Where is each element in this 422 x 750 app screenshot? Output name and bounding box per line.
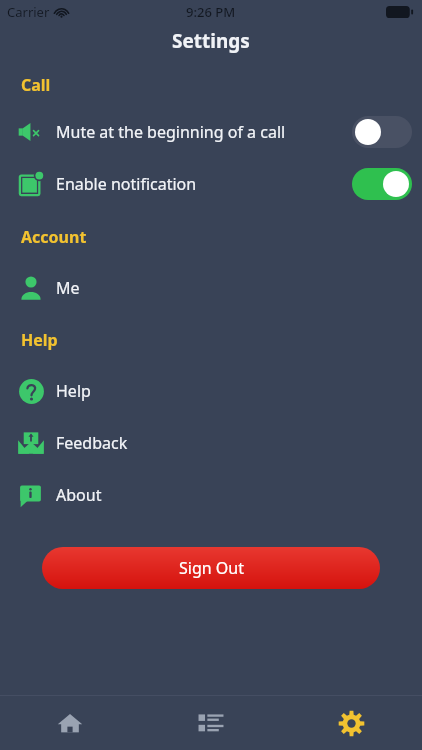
staticText: Me	[56, 277, 80, 299]
staticText: Account	[21, 226, 87, 248]
staticText: Enable notification	[56, 173, 197, 195]
staticText: Help	[21, 329, 58, 351]
staticText: Help	[56, 380, 91, 402]
button[interactable]: Mute at the beginning of a call	[0, 113, 422, 151]
staticText: Feedback	[56, 432, 128, 454]
staticText: Carrier	[7, 3, 50, 21]
staticText: Sign Out	[179, 557, 244, 579]
button[interactable]: Me	[0, 270, 422, 306]
button[interactable]: Help	[0, 373, 422, 409]
button[interactable]: Sign Out	[42, 547, 380, 589]
button[interactable]: Home	[0, 696, 140, 750]
button[interactable]: Settings	[281, 696, 422, 750]
staticText: Settings	[172, 28, 250, 54]
staticText: Mute at the beginning of a call	[56, 121, 286, 143]
button[interactable]: Switch on	[352, 168, 412, 200]
staticText: About	[56, 484, 102, 506]
button[interactable]: Switch off	[352, 116, 412, 148]
button[interactable]: About	[0, 477, 422, 513]
button[interactable]: Feedback	[0, 425, 422, 461]
staticText: Call	[21, 74, 51, 96]
staticText: 9:26 PM	[186, 3, 236, 21]
button[interactable]: Enable notification	[0, 165, 422, 203]
button[interactable]: List	[140, 696, 281, 750]
